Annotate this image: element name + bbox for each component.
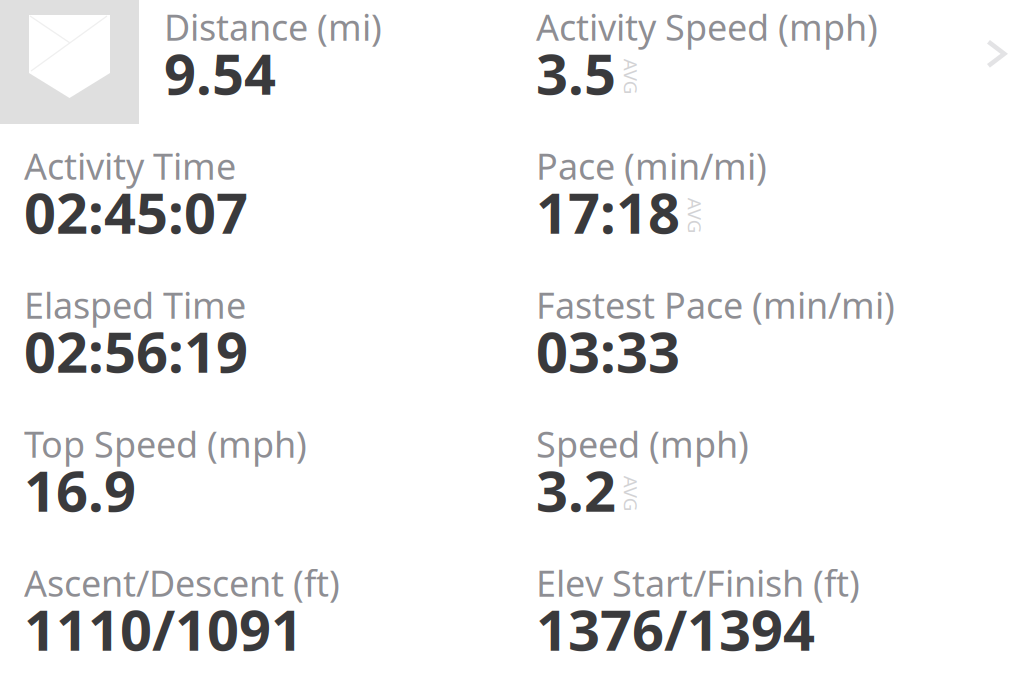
- staticText: Elasped Time: [24, 281, 246, 329]
- staticText: 02:45:07: [24, 175, 248, 249]
- staticText: 1376/1394: [536, 592, 815, 666]
- staticText: 3.5: [536, 36, 616, 110]
- staticText: Activity Speed (mph): [536, 3, 878, 51]
- staticText: Activity Time: [24, 142, 236, 190]
- staticText: 16.9: [24, 453, 136, 527]
- staticText: 02:56:19: [24, 314, 248, 388]
- staticText: 9.54: [164, 36, 276, 110]
- staticText: Fastest Pace (min/mi): [536, 281, 895, 329]
- staticText: 17:18: [536, 175, 680, 249]
- staticText: Elev Start/Finish (ft): [536, 559, 860, 607]
- staticText: AVG: [613, 481, 649, 506]
- staticText: AVG: [677, 203, 713, 228]
- staticText: Top Speed (mph): [24, 420, 307, 468]
- staticText: 3.2: [536, 453, 616, 527]
- staticText: AVG: [613, 64, 649, 89]
- staticText: Distance (mi): [164, 3, 382, 51]
- button[interactable]: Workout details: [0, 0, 1024, 697]
- staticText: Ascent/Descent (ft): [24, 559, 340, 607]
- staticText: Pace (min/mi): [536, 142, 767, 190]
- staticText: 1110/1091: [24, 592, 303, 666]
- staticText: 03:33: [536, 314, 680, 388]
- staticText: Speed (mph): [536, 420, 749, 468]
